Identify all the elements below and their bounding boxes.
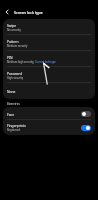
staticText: Medium-high security, Current lock type	[7, 60, 56, 64]
staticText: Pattern	[7, 39, 19, 43]
button[interactable]: Password	[3, 67, 95, 83]
button[interactable]: Fingerprints	[3, 120, 95, 135]
staticText: None	[7, 89, 16, 93]
staticText: High security	[7, 76, 24, 80]
staticText: Face	[7, 112, 15, 116]
staticText: Medium security	[7, 44, 28, 48]
button[interactable]: Swipe	[3, 19, 95, 35]
button[interactable]: Pattern	[3, 35, 95, 51]
staticText: Swipe	[7, 23, 17, 27]
staticText: Biometrics	[7, 102, 20, 105]
staticText: Fingerprints	[7, 123, 26, 127]
button[interactable]: None	[3, 83, 95, 99]
staticText: PIN	[7, 55, 13, 59]
button[interactable]: Face	[3, 107, 95, 120]
button[interactable]: Turn on Face	[81, 111, 91, 117]
staticText: Password	[7, 71, 22, 75]
button[interactable]: Navigate up	[0, 5, 14, 19]
button[interactable]: PIN	[3, 51, 95, 67]
staticText: Screen lock type	[14, 10, 43, 15]
staticText: No security	[7, 28, 21, 32]
button[interactable]: Turn off Fingerprints	[81, 125, 91, 131]
staticText: Registered	[7, 128, 21, 132]
